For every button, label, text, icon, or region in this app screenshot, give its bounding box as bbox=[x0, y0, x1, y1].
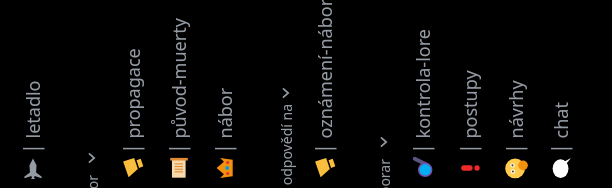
button[interactable]: │ propagace bbox=[110, 0, 156, 188]
staticText: │ oznámení-nábor bbox=[313, 0, 338, 154]
staticText: komunikator bbox=[83, 175, 102, 188]
button[interactable]: kolaborar bbox=[369, 0, 399, 188]
staticText: │ kontrola-lore bbox=[411, 29, 436, 154]
button[interactable]: │ chat bbox=[538, 0, 584, 188]
staticText: kolaborar bbox=[375, 159, 394, 188]
button[interactable]: │ nábor bbox=[202, 0, 248, 188]
button[interactable]: │ letadlo bbox=[10, 0, 56, 188]
staticText: │ letadlo bbox=[21, 80, 46, 154]
staticText: │ původ-muerty bbox=[167, 18, 192, 154]
staticText: Diskuze otázek a odpovědí na nábor bbox=[277, 104, 296, 188]
staticText: │ propagace bbox=[121, 48, 146, 154]
button[interactable]: │ původ-muerty bbox=[156, 0, 202, 188]
button[interactable]: │ oznámení-nábor bbox=[302, 0, 348, 188]
button[interactable]: │ kontrola-lore bbox=[400, 0, 446, 188]
staticText: │ návrhy bbox=[504, 80, 529, 154]
button[interactable]: │ návrhy bbox=[493, 0, 539, 188]
staticText: │ postupy bbox=[458, 70, 483, 154]
staticText: │ nábor bbox=[213, 87, 238, 154]
button[interactable]: │ postupy bbox=[447, 0, 493, 188]
button[interactable]: Diskuze otázek a odpovědí na nábor bbox=[271, 0, 301, 188]
button[interactable]: komunikator bbox=[77, 0, 107, 188]
staticText: │ chat bbox=[549, 102, 574, 154]
